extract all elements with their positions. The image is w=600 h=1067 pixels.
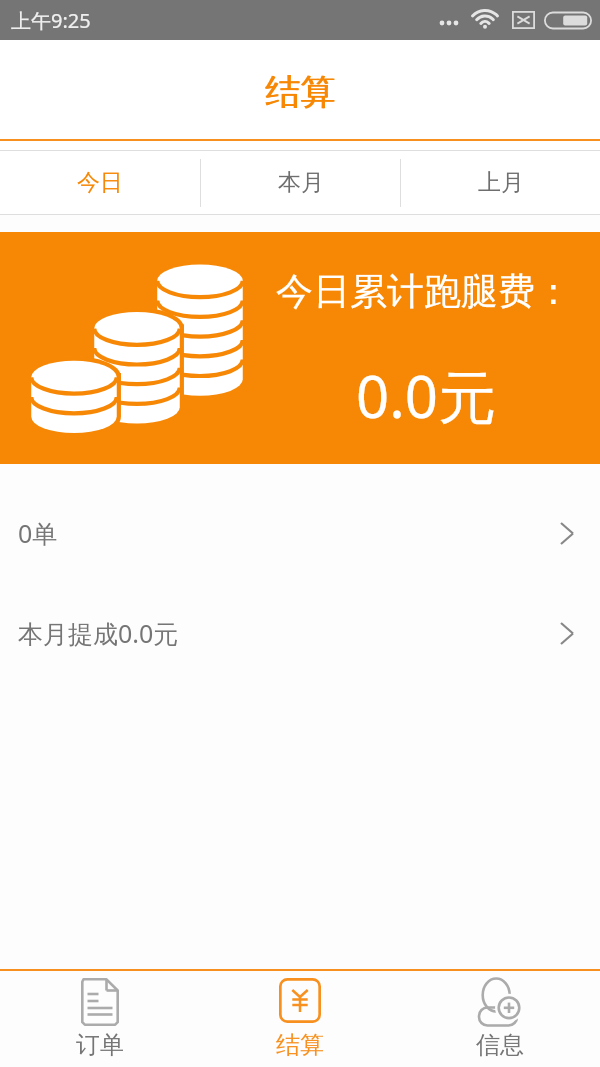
staticText: 结算: [265, 70, 335, 114]
staticText: 本月提成0.0元: [18, 616, 179, 650]
staticText: 0单: [18, 516, 58, 550]
button[interactable]: 本月提成0.0元: [0, 583, 600, 683]
staticText: 本月: [278, 168, 324, 197]
button[interactable]: 今日累计跑腿费：: [0, 232, 600, 464]
staticText: 今日累计跑腿费：: [276, 268, 572, 315]
button[interactable]: 订单: [0, 971, 200, 1067]
button[interactable]: 0单: [0, 483, 600, 583]
button[interactable]: 今日: [0, 151, 200, 214]
staticText: 今日: [77, 168, 123, 197]
staticText: 结算: [266, 70, 336, 114]
staticText: 订单: [76, 1030, 124, 1060]
button[interactable]: 上月: [401, 151, 600, 214]
staticText: 信息: [476, 1030, 524, 1060]
button[interactable]: 结算: [200, 971, 400, 1067]
button[interactable]: 本月: [201, 151, 400, 214]
staticText: 0.0元: [356, 356, 496, 435]
button[interactable]: 信息: [400, 971, 600, 1067]
staticText: 结算: [276, 1030, 324, 1060]
staticText: 上午9:25: [11, 7, 91, 34]
staticText: 上月: [478, 168, 524, 197]
